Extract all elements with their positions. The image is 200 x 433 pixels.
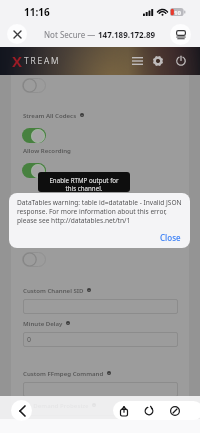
staticText: DataTables warning: table id=datatable -… (17, 198, 183, 225)
button[interactable]: Back (11, 400, 32, 421)
staticText: Stream All Codecs (23, 111, 77, 119)
staticText: 147.189.172.89 (98, 29, 156, 40)
staticText: 10 (174, 9, 181, 17)
staticText: Enable RTMP output for this channel. (47, 176, 121, 192)
staticText: Not Secure — (44, 29, 98, 40)
button[interactable]: Close (7, 24, 27, 44)
staticText: Close (160, 232, 181, 243)
button[interactable]: Toggle off (22, 78, 46, 93)
button[interactable]: Menu (127, 51, 147, 71)
staticText: On Demand Probesize (23, 401, 89, 409)
staticText: 11:16 (24, 5, 50, 19)
staticText: TREAM (24, 55, 61, 67)
button[interactable]: Settings (148, 51, 168, 71)
button[interactable]: Toggle off (22, 252, 46, 267)
staticText: X (12, 51, 23, 71)
button[interactable]: Close (160, 232, 190, 248)
button[interactable]: Power (171, 51, 191, 71)
staticText: 0 (27, 335, 32, 345)
staticText: 128000 (27, 418, 52, 428)
button[interactable]: Toggle on (22, 163, 46, 178)
button[interactable]: Page settings (170, 24, 191, 45)
button[interactable]: Tabs (165, 401, 184, 420)
button[interactable]: Reload (139, 401, 158, 420)
staticText: Custom Channel SID (23, 286, 84, 294)
staticText: Minute Delay (23, 319, 63, 327)
staticText: Custom FFmpeg Command (23, 369, 104, 377)
button[interactable]: Share (114, 401, 133, 420)
button[interactable]: Toggle on (22, 128, 46, 143)
staticText: Allow Recording (23, 146, 71, 154)
